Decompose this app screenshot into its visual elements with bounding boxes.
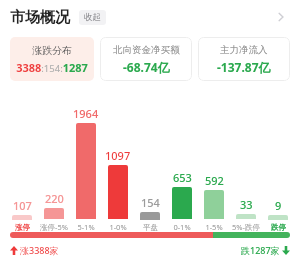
staticText: 1-0% (109, 222, 127, 232)
button[interactable] (140, 212, 160, 220)
staticText: 220 (45, 191, 64, 206)
staticText: 653 (173, 170, 192, 185)
staticText: 1964 (73, 106, 99, 121)
staticText: 涨3388家 (20, 244, 59, 256)
button[interactable] (204, 190, 224, 219)
button[interactable] (76, 123, 96, 219)
staticText: 1-5% (205, 222, 223, 232)
staticText: 跌1287家 (241, 244, 280, 256)
button[interactable] (268, 215, 288, 220)
staticText: 跌停 (271, 223, 286, 232)
staticText: 5%-跌停 (232, 222, 260, 232)
button[interactable]: 北向资金净买额 (100, 37, 192, 81)
staticText: 33 (240, 197, 253, 212)
staticText: 0-1% (173, 222, 191, 232)
staticText: 市场概况 (10, 8, 70, 27)
staticText: 涨停-5% (40, 222, 68, 232)
button[interactable]: More (270, 3, 292, 31)
staticText: 主力净流入 (220, 44, 268, 56)
button[interactable] (44, 208, 64, 219)
staticText: 592 (205, 173, 224, 188)
staticText: 北向资金净买额 (113, 44, 180, 56)
button[interactable] (108, 165, 128, 219)
button[interactable]: 主力净流入 (198, 37, 290, 81)
button[interactable]: 涨跌分布 (10, 37, 94, 81)
staticText: -68.74亿 (123, 59, 170, 75)
staticText: 收起 (84, 12, 101, 23)
staticText: 涨跌分布 (32, 44, 72, 57)
button[interactable] (172, 187, 192, 219)
staticText: 平盘 (143, 223, 158, 232)
staticText: -137.87亿 (217, 59, 271, 75)
button[interactable] (236, 214, 256, 219)
staticText: 107 (13, 198, 32, 213)
staticText: 5-1% (77, 222, 95, 232)
button[interactable]: 收起 (79, 10, 106, 25)
button[interactable] (12, 215, 32, 220)
staticText: 154 (141, 195, 160, 210)
staticText: 9 (275, 198, 282, 213)
staticText: 3388:154:1287 (16, 60, 88, 75)
staticText: 涨停 (15, 223, 30, 232)
staticText: 1097 (105, 148, 131, 163)
